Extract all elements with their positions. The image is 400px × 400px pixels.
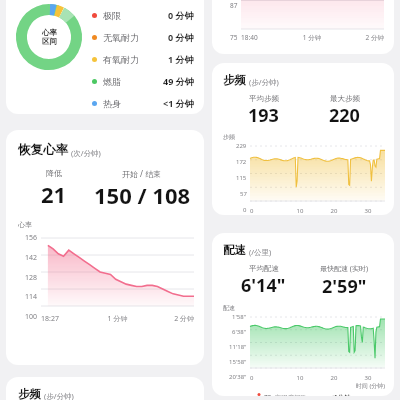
staticText: 220 xyxy=(329,103,360,128)
staticText: 0 xyxy=(243,206,247,214)
button[interactable]: 步频 xyxy=(212,63,394,215)
staticText: 燃脂 xyxy=(103,76,121,87)
staticText: 1 分钟 xyxy=(288,33,336,42)
staticText: 无氧耐力 xyxy=(103,32,139,43)
staticText: 11'18" xyxy=(229,343,247,351)
staticText: 步频 xyxy=(223,73,246,87)
staticText: 平均步频 xyxy=(249,94,279,103)
staticText: 心率 xyxy=(42,28,57,37)
staticText: 1'58" xyxy=(232,313,247,321)
staticText: 128 xyxy=(25,273,38,283)
staticText: 57 xyxy=(240,190,247,198)
staticText: Z5: 高强度间歇 xyxy=(264,393,308,396)
staticText: 恢复心率 xyxy=(18,142,68,158)
staticText: 49 分钟 xyxy=(163,75,194,87)
staticText: 100 xyxy=(25,312,38,322)
staticText: 150 / 108 xyxy=(94,180,191,210)
staticText: 20'38" xyxy=(229,373,247,381)
staticText: 最快配速 (实时) xyxy=(320,264,369,274)
staticText: 开始 / 结束 xyxy=(122,168,162,179)
staticText: 有氧耐力 xyxy=(103,54,139,65)
staticText: 75 xyxy=(230,33,238,42)
staticText: 配速 xyxy=(223,304,235,312)
staticText: 0 分钟 xyxy=(168,9,194,21)
button[interactable]: 99 xyxy=(212,0,394,54)
staticText: (次/分钟) xyxy=(71,148,101,158)
staticText: 21 xyxy=(41,179,67,209)
button[interactable]: 步频 xyxy=(6,377,204,400)
button[interactable]: 心率 xyxy=(6,0,204,114)
staticText: 87 xyxy=(230,1,238,10)
staticText: 2 分钟 xyxy=(336,33,384,42)
staticText: 热身 xyxy=(103,98,121,109)
staticText: 1 分钟 xyxy=(168,53,194,65)
staticText: 降低 xyxy=(46,168,62,178)
staticText: 1 分钟 xyxy=(92,314,143,324)
staticText: 10 xyxy=(283,374,317,382)
staticText: <1 分钟 xyxy=(163,97,194,109)
staticText: 18:27 xyxy=(41,314,92,324)
staticText: 时间 (分钟) xyxy=(223,382,385,390)
staticText: 114 xyxy=(25,292,38,302)
staticText: 0 xyxy=(250,374,283,382)
staticText: 2 分钟 xyxy=(143,314,194,324)
staticText: 20 xyxy=(317,207,351,215)
button[interactable]: 配速 xyxy=(212,233,394,396)
staticText: 最大步频 xyxy=(330,94,360,103)
staticText: 193 xyxy=(248,103,279,128)
staticText: 步频 xyxy=(223,133,235,141)
staticText: 平均配速 xyxy=(249,264,279,273)
staticText: (步/分钟) xyxy=(249,77,279,87)
staticText: 步频 xyxy=(18,387,41,400)
staticText: 配速 xyxy=(223,243,246,257)
staticText: 6'38" xyxy=(232,328,247,336)
staticText: 18:40 xyxy=(241,33,288,42)
staticText: 0 分钟 xyxy=(168,31,194,43)
staticText: 6'14" xyxy=(241,273,286,298)
staticText: 心率 xyxy=(18,220,32,229)
button[interactable]: 恢复心率 xyxy=(6,130,204,365)
staticText: (/公里) xyxy=(249,247,272,257)
staticText: (步/分钟) xyxy=(44,391,74,400)
staticText: 30 xyxy=(351,374,385,382)
staticText: 15'58" xyxy=(229,358,247,366)
staticText: 0 xyxy=(250,207,283,215)
staticText: 156 xyxy=(25,233,38,243)
staticText: 10 xyxy=(283,207,317,215)
staticText: 2'59" xyxy=(322,274,367,299)
staticText: 20 xyxy=(317,374,351,382)
staticText: <1分钟 xyxy=(330,393,351,396)
staticText: 极限 xyxy=(103,10,121,21)
staticText: 115 xyxy=(236,174,247,182)
staticText: 142 xyxy=(25,253,38,263)
staticText: 172 xyxy=(236,158,247,166)
staticText: 区间 xyxy=(42,37,57,46)
staticText: 229 xyxy=(236,142,247,150)
staticText: 30 xyxy=(351,207,385,215)
